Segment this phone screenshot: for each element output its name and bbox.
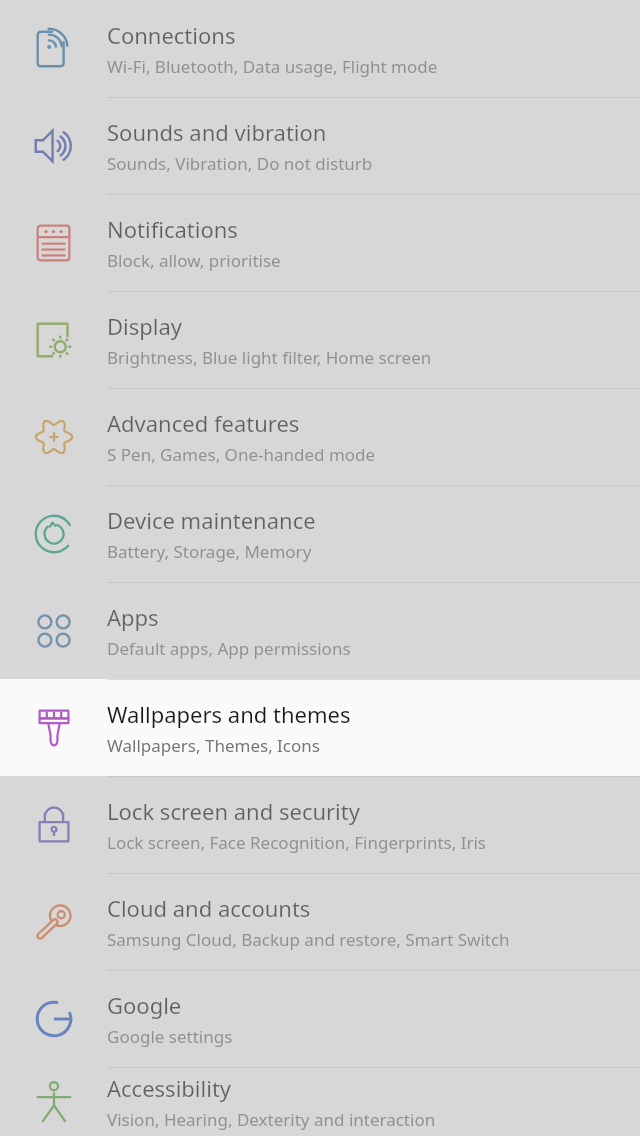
staticText: Lock screen, Face Recognition, Fingerpri… (107, 831, 486, 854)
staticText: Default apps, App permissions (107, 637, 351, 660)
staticText: Apps (107, 602, 159, 632)
staticText: Wallpapers, Themes, Icons (107, 734, 320, 757)
button[interactable]: Accessibility (0, 1067, 640, 1136)
staticText: Connections (107, 20, 236, 50)
button[interactable]: Lock screen and security (0, 776, 640, 873)
staticText: S Pen, Games, One-handed mode (107, 443, 376, 466)
staticText: Advanced features (107, 408, 300, 438)
staticText: Google (107, 990, 182, 1020)
staticText: Cloud and accounts (107, 893, 311, 923)
staticText: Wallpapers and themes (107, 699, 351, 729)
button[interactable]: Connections (0, 0, 640, 97)
button[interactable]: Google (0, 970, 640, 1067)
button[interactable]: Cloud and accounts (0, 873, 640, 970)
staticText: Block, allow, prioritise (107, 249, 281, 272)
staticText: Samsung Cloud, Backup and restore, Smart… (107, 928, 510, 951)
staticText: Device maintenance (107, 505, 316, 535)
button[interactable]: Notifications (0, 194, 640, 291)
staticText: Battery, Storage, Memory (107, 540, 312, 563)
button[interactable]: Sounds and vibration (0, 97, 640, 194)
button[interactable]: Apps (0, 582, 640, 679)
staticText: Lock screen and security (107, 796, 360, 826)
staticText: Accessibility (107, 1073, 232, 1103)
button[interactable]: Display (0, 291, 640, 388)
staticText: Display (107, 311, 183, 341)
staticText: Sounds and vibration (107, 117, 327, 147)
button[interactable]: Advanced features (0, 388, 640, 485)
staticText: Google settings (107, 1025, 233, 1048)
staticText: Brightness, Blue light filter, Home scre… (107, 346, 432, 369)
button[interactable]: Device maintenance (0, 485, 640, 582)
button[interactable]: Wallpapers and themes (0, 679, 640, 776)
staticText: Notifications (107, 214, 238, 244)
staticText: Wi-Fi, Bluetooth, Data usage, Flight mod… (107, 55, 438, 78)
staticText: Sounds, Vibration, Do not disturb (107, 152, 373, 175)
staticText: Vision, Hearing, Dexterity and interacti… (107, 1108, 436, 1131)
